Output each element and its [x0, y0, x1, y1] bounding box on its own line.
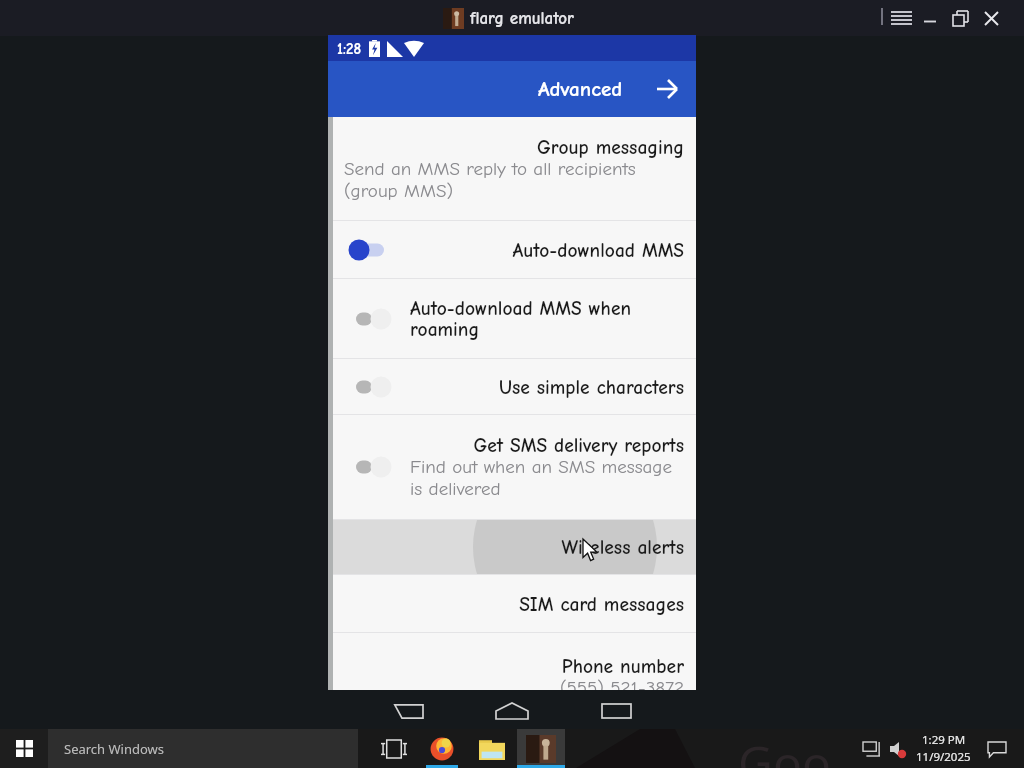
button[interactable]: Toggle off: [346, 306, 392, 332]
staticText: Auto-download MMS when roaming: [410, 297, 684, 341]
button[interactable]: Forward: [647, 69, 687, 109]
staticText: 1:29 PM: [922, 732, 966, 748]
button[interactable]: Task view: [377, 729, 411, 768]
staticText: Advanced: [538, 77, 623, 101]
button[interactable]: Toggle off: [346, 374, 392, 400]
button[interactable]: Close: [978, 0, 1004, 36]
button[interactable]: Toggle off: [328, 359, 696, 414]
button[interactable]: Back: [380, 696, 436, 726]
button[interactable]: Wireless alerts: [328, 520, 696, 574]
staticText: 11/9/2025: [916, 749, 971, 765]
staticText: 1:28: [337, 40, 362, 57]
staticText: Get SMS delivery reports: [410, 434, 684, 456]
staticText: Send an MMS reply to all recipients: [344, 158, 684, 180]
staticText: Find out when an SMS message: [410, 456, 684, 478]
button[interactable]: Toggle off: [328, 279, 696, 358]
button[interactable]: Notifications: [985, 737, 1009, 761]
button[interactable]: Toggle off: [328, 415, 696, 519]
staticText: flarg emulator: [470, 9, 574, 29]
staticText: Use simple characters: [344, 376, 684, 398]
button[interactable]: Firefox: [426, 729, 458, 768]
button[interactable]: Recent apps: [588, 696, 644, 726]
button[interactable]: Toggle on: [328, 221, 696, 278]
staticText: Auto-download MMS: [344, 239, 684, 261]
button[interactable]: File Explorer: [476, 729, 508, 768]
button[interactable]: Home: [484, 696, 540, 726]
staticText: (group MMS): [344, 180, 684, 202]
button[interactable]: flarg emulator: [517, 729, 565, 768]
button[interactable]: Network: [860, 738, 882, 760]
staticText: Phone number: [344, 655, 684, 677]
button[interactable]: Phone number: [328, 633, 696, 690]
button[interactable]: Menu: [886, 0, 916, 36]
staticText: Goo: [738, 730, 832, 768]
staticText: Search Windows: [64, 740, 165, 758]
button[interactable]: Toggle off: [346, 454, 392, 480]
button[interactable]: Volume muted: [886, 738, 908, 760]
button[interactable]: Minimize: [918, 0, 942, 36]
button[interactable]: SIM card messages: [328, 575, 696, 632]
button[interactable]: Start: [0, 729, 48, 768]
button[interactable]: Group messaging: [328, 117, 696, 220]
staticText: (555) 521-3872: [344, 677, 684, 690]
button[interactable]: Toggle on: [346, 237, 392, 263]
button[interactable]: Search Windows: [48, 729, 358, 768]
staticText: Wireless alerts: [344, 536, 684, 558]
staticText: SIM card messages: [344, 593, 684, 615]
staticText: is delivered: [410, 478, 684, 500]
button[interactable]: Restore: [947, 0, 973, 36]
staticText: Group messaging: [344, 136, 684, 158]
